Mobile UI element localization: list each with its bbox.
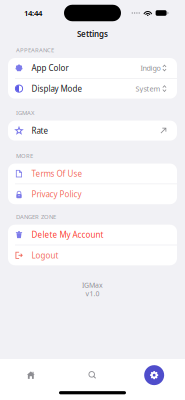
staticText: 14:44 [24, 8, 42, 18]
button[interactable]: Settings [123, 359, 185, 391]
staticText: Display Mode [31, 83, 82, 94]
staticText: Privacy Policy [31, 189, 81, 199]
staticText: System [135, 84, 160, 93]
staticText: IGMax [82, 280, 103, 290]
staticText: IGMAX [16, 109, 34, 117]
staticText: Rate [31, 125, 48, 136]
staticText: Indigo [140, 63, 160, 73]
staticText: Delete My Account [31, 229, 103, 240]
staticText: v1.0 [85, 289, 99, 298]
button[interactable]: Terms Of Use [8, 164, 177, 184]
button[interactable]: Rate [8, 121, 177, 141]
staticText: APPEARANCE [16, 46, 54, 54]
button[interactable]: Delete My Account [8, 225, 177, 245]
staticText: Settings [77, 29, 108, 39]
staticText: App Color [31, 63, 68, 73]
staticText: Logout [31, 250, 58, 261]
staticText: MORE [16, 152, 33, 160]
button[interactable]: Privacy Policy [8, 184, 177, 204]
button[interactable]: Logout [8, 245, 177, 265]
staticText: DANGER ZONE [16, 213, 56, 221]
staticText: Terms Of Use [31, 168, 82, 179]
button[interactable]: App Color [8, 58, 177, 78]
button[interactable]: Home [0, 359, 62, 391]
button[interactable]: Display Mode [8, 79, 177, 99]
button[interactable]: Search [62, 359, 123, 391]
